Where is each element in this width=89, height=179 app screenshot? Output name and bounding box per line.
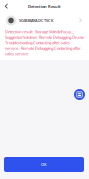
staticText: Detection Result: [28, 4, 61, 9]
button[interactable]: Back: [0, 0, 13, 13]
button[interactable]: OK: [4, 157, 84, 172]
button[interactable]: SGI838AYADCTSCK: [0, 13, 89, 28]
button[interactable]: Save: [74, 89, 85, 100]
staticText: SGI838AYADCTSCK: [19, 18, 54, 23]
staticText: OK: [41, 162, 47, 167]
staticText: Detection result: Storage VideoInFocus_;…: [5, 29, 84, 56]
